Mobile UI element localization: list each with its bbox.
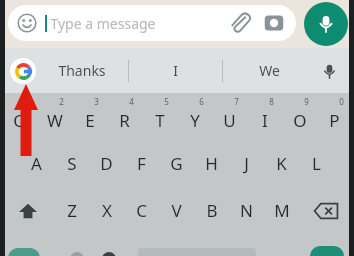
staticText: D — [100, 152, 113, 175]
staticText: 4 — [129, 96, 134, 107]
button[interactable]: X — [89, 187, 124, 234]
button[interactable]: 7 — [212, 93, 247, 140]
button[interactable]: D — [89, 140, 124, 187]
button[interactable]: F — [124, 140, 159, 187]
staticText: W — [47, 109, 63, 132]
button[interactable]: 5 — [142, 93, 177, 140]
button[interactable]: 9 — [282, 93, 317, 140]
staticText: S — [67, 152, 77, 175]
staticText: B — [206, 199, 218, 222]
button[interactable]: Voice input — [316, 58, 342, 84]
button[interactable]: 2 — [37, 93, 72, 140]
staticText: A — [31, 152, 42, 175]
button[interactable]: 1 — [2, 93, 37, 140]
button[interactable]: H — [194, 140, 229, 187]
staticText: C — [136, 199, 147, 222]
button[interactable]: K — [264, 140, 299, 187]
staticText: Z — [67, 199, 77, 222]
button[interactable]: Attach — [228, 11, 252, 35]
button[interactable]: Voice message — [304, 2, 348, 46]
button[interactable] — [102, 252, 116, 256]
staticText: Y — [190, 109, 200, 132]
button[interactable]: Shift — [2, 187, 54, 234]
button[interactable]: Thanks — [36, 48, 128, 93]
staticText: Thanks — [58, 61, 106, 80]
staticText: Type a message — [50, 14, 156, 33]
button[interactable]: Emoji key — [70, 252, 84, 256]
staticText: O — [293, 109, 307, 132]
staticText: G — [170, 152, 183, 175]
staticText: 5 — [164, 96, 169, 107]
button[interactable]: Send — [310, 246, 344, 256]
staticText: We — [259, 61, 280, 80]
staticText: I — [262, 109, 268, 132]
button[interactable]: I — [129, 48, 222, 93]
button[interactable]: S — [54, 140, 89, 187]
button[interactable]: Emoji — [17, 13, 37, 33]
button[interactable]: Google — [10, 58, 36, 84]
staticText: 9 — [304, 96, 309, 107]
staticText: H — [205, 152, 218, 175]
button[interactable]: Camera — [262, 11, 286, 35]
staticText: Q — [13, 109, 27, 132]
button[interactable]: G — [159, 140, 194, 187]
button[interactable]: Emoji — [8, 5, 296, 41]
button[interactable]: B — [194, 187, 229, 234]
button[interactable]: 3 — [72, 93, 107, 140]
button[interactable]: 6 — [177, 93, 212, 140]
staticText: 7 — [234, 96, 239, 107]
button[interactable]: 0 — [317, 93, 352, 140]
staticText: 8 — [269, 96, 274, 107]
staticText: F — [137, 152, 146, 175]
button[interactable]: A — [19, 140, 54, 187]
staticText: 6 — [199, 96, 204, 107]
button[interactable]: We — [223, 48, 316, 93]
staticText: K — [276, 152, 287, 175]
staticText: I — [173, 61, 178, 80]
button[interactable]: J — [229, 140, 264, 187]
button[interactable]: Backspace — [299, 187, 352, 234]
staticText: E — [85, 109, 95, 132]
staticText: X — [102, 199, 112, 222]
button[interactable]: Z — [54, 187, 89, 234]
button[interactable]: 4 — [107, 93, 142, 140]
staticText: L — [312, 152, 321, 175]
staticText: 2 — [59, 96, 64, 107]
button[interactable] — [8, 248, 40, 256]
button[interactable]: N — [229, 187, 264, 234]
button[interactable]: V — [159, 187, 194, 234]
button[interactable]: C — [124, 187, 159, 234]
button[interactable]: M — [264, 187, 299, 234]
staticText: 0 — [339, 96, 344, 107]
staticText: N — [240, 199, 253, 222]
staticText: 3 — [94, 96, 99, 107]
staticText: M — [274, 199, 290, 222]
button[interactable]: L — [299, 140, 334, 187]
staticText: U — [223, 109, 236, 132]
staticText: T — [155, 109, 165, 132]
staticText: P — [329, 109, 340, 132]
staticText: R — [119, 109, 130, 132]
staticText: V — [171, 199, 182, 222]
staticText: J — [244, 152, 249, 175]
button[interactable]: 8 — [247, 93, 282, 140]
